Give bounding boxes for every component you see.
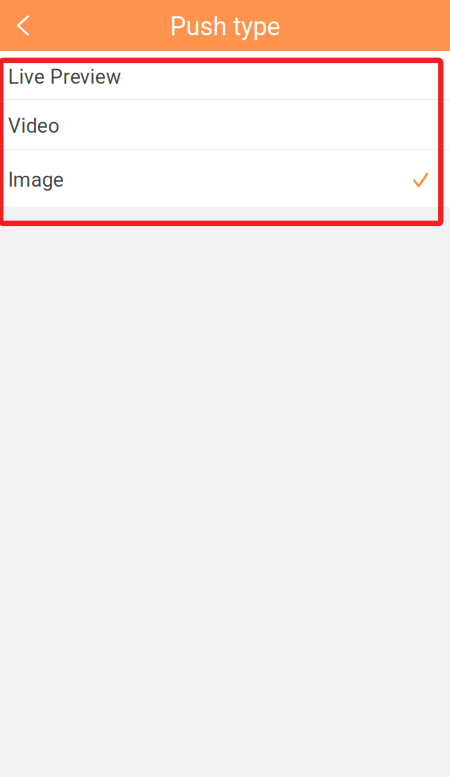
staticText: Live Preview — [8, 65, 121, 89]
button[interactable]: Live Preview — [0, 51, 450, 99]
button[interactable]: Video — [0, 100, 450, 149]
staticText: Video — [8, 114, 59, 138]
button[interactable]: Image — [0, 150, 450, 207]
button[interactable]: Back — [0, 0, 46, 51]
staticText: Push type — [170, 12, 280, 41]
staticText: Image — [8, 168, 64, 192]
